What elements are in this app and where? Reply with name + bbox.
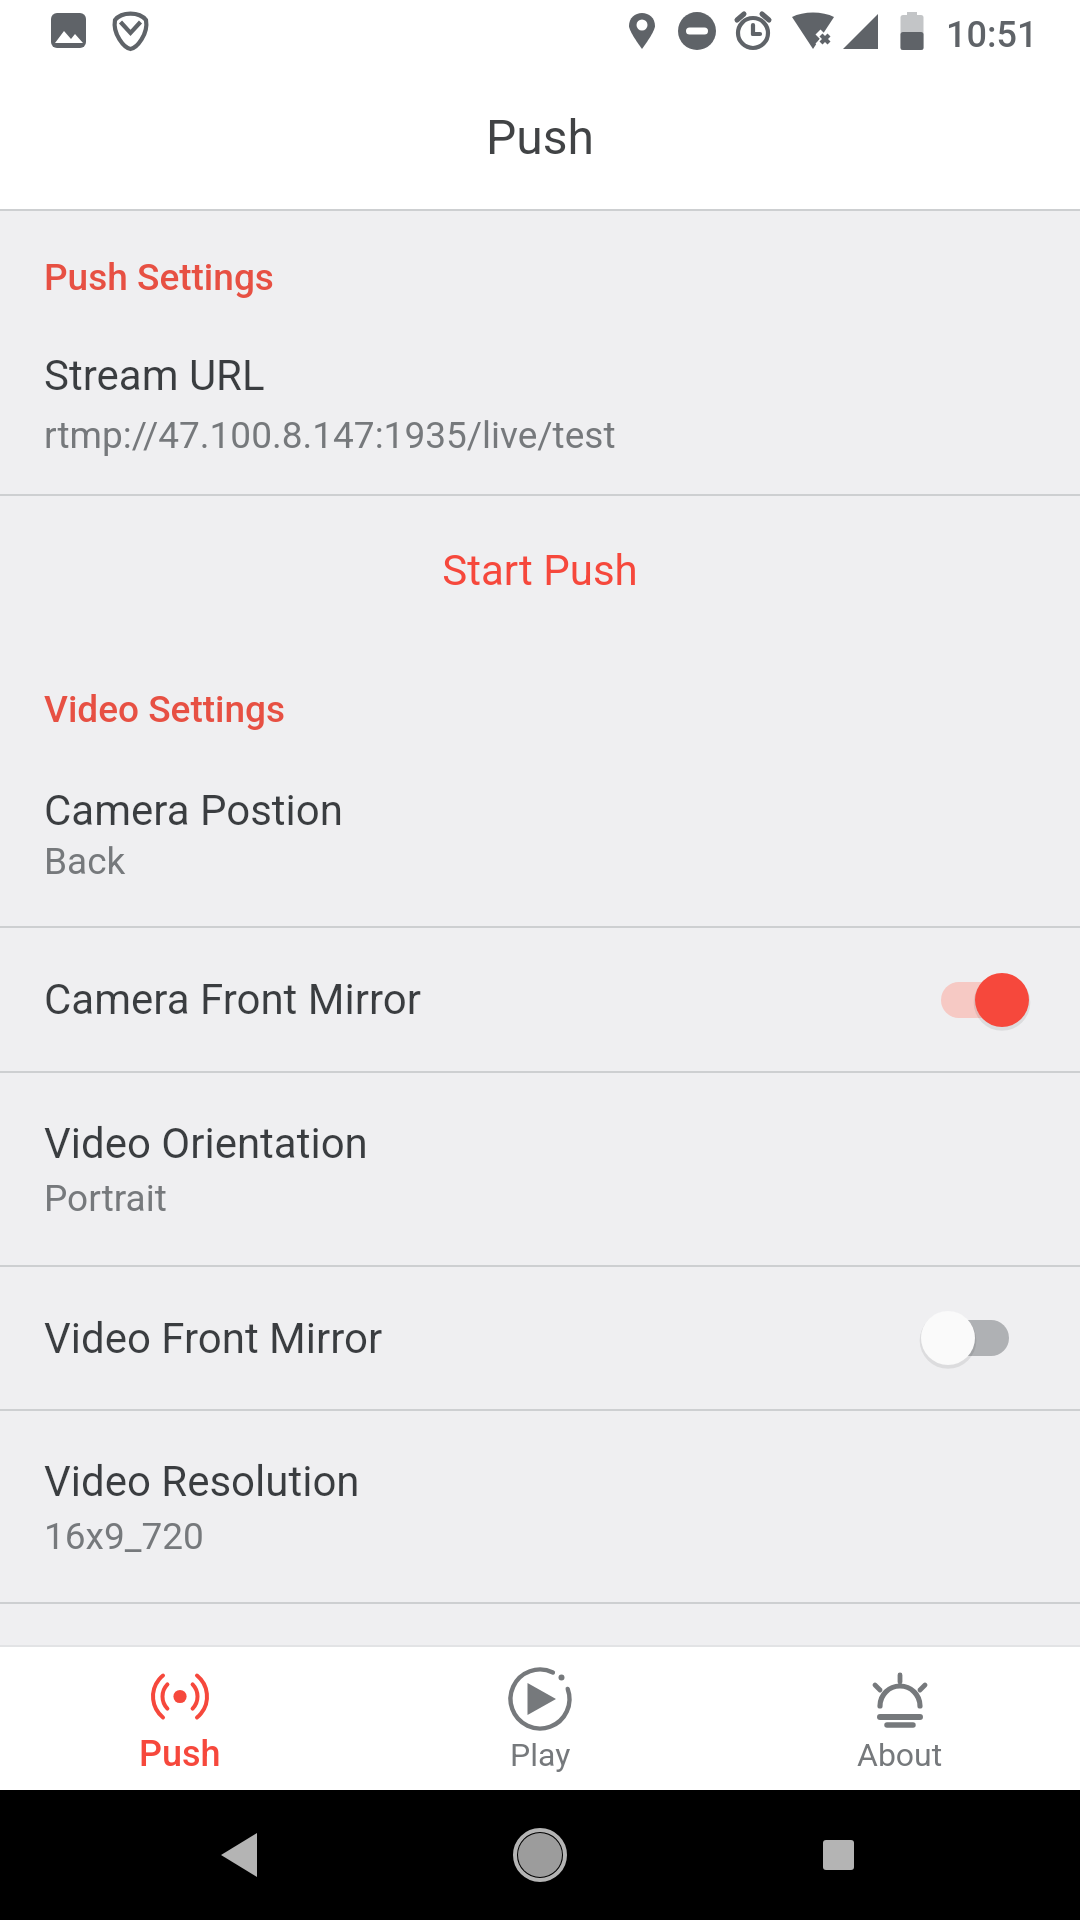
button[interactable]: Video Resolution [0, 1411, 1080, 1602]
button[interactable]: Start Push [0, 496, 1080, 636]
staticText: Push [139, 1733, 221, 1775]
staticText: 16x9_720 [44, 1515, 204, 1558]
staticText: Back [44, 840, 126, 883]
button[interactable]: Stream URL [0, 307, 1080, 494]
staticText: About [857, 1736, 943, 1774]
button[interactable]: Camera Postion [0, 739, 1080, 926]
button[interactable]: About [720, 1647, 1080, 1790]
button[interactable]: Video Front Mirror [0, 1267, 1080, 1409]
staticText: Push [486, 109, 594, 165]
staticText: rtmp://47.100.8.147:1935/live/test [44, 414, 616, 457]
button[interactable]: Camera Front Mirror [0, 928, 1080, 1071]
other: About [865, 1664, 935, 1734]
other: System navigation [0, 1790, 1080, 1920]
staticText: Stream URL [44, 351, 265, 400]
button[interactable]: Video Orientation [0, 1073, 1080, 1265]
other: Play [505, 1664, 575, 1734]
other: Push [145, 1664, 215, 1734]
staticText: Push Settings [44, 256, 274, 299]
staticText: Start Push [442, 546, 638, 595]
staticText: Video Settings [44, 688, 286, 731]
button[interactable] [921, 1303, 1029, 1373]
staticText: Video Front Mirror [44, 1314, 383, 1363]
button[interactable]: Push [0, 1647, 360, 1790]
button[interactable]: Play [360, 1647, 720, 1790]
staticText: Camera Postion [44, 786, 343, 835]
staticText: 10:51 [946, 14, 1038, 56]
button[interactable] [921, 965, 1029, 1035]
staticText: Camera Front Mirror [44, 975, 421, 1024]
staticText: Play [510, 1736, 571, 1774]
staticText: Portrait [44, 1177, 167, 1220]
staticText: Video Resolution [44, 1457, 360, 1506]
staticText: Video Orientation [44, 1119, 368, 1168]
